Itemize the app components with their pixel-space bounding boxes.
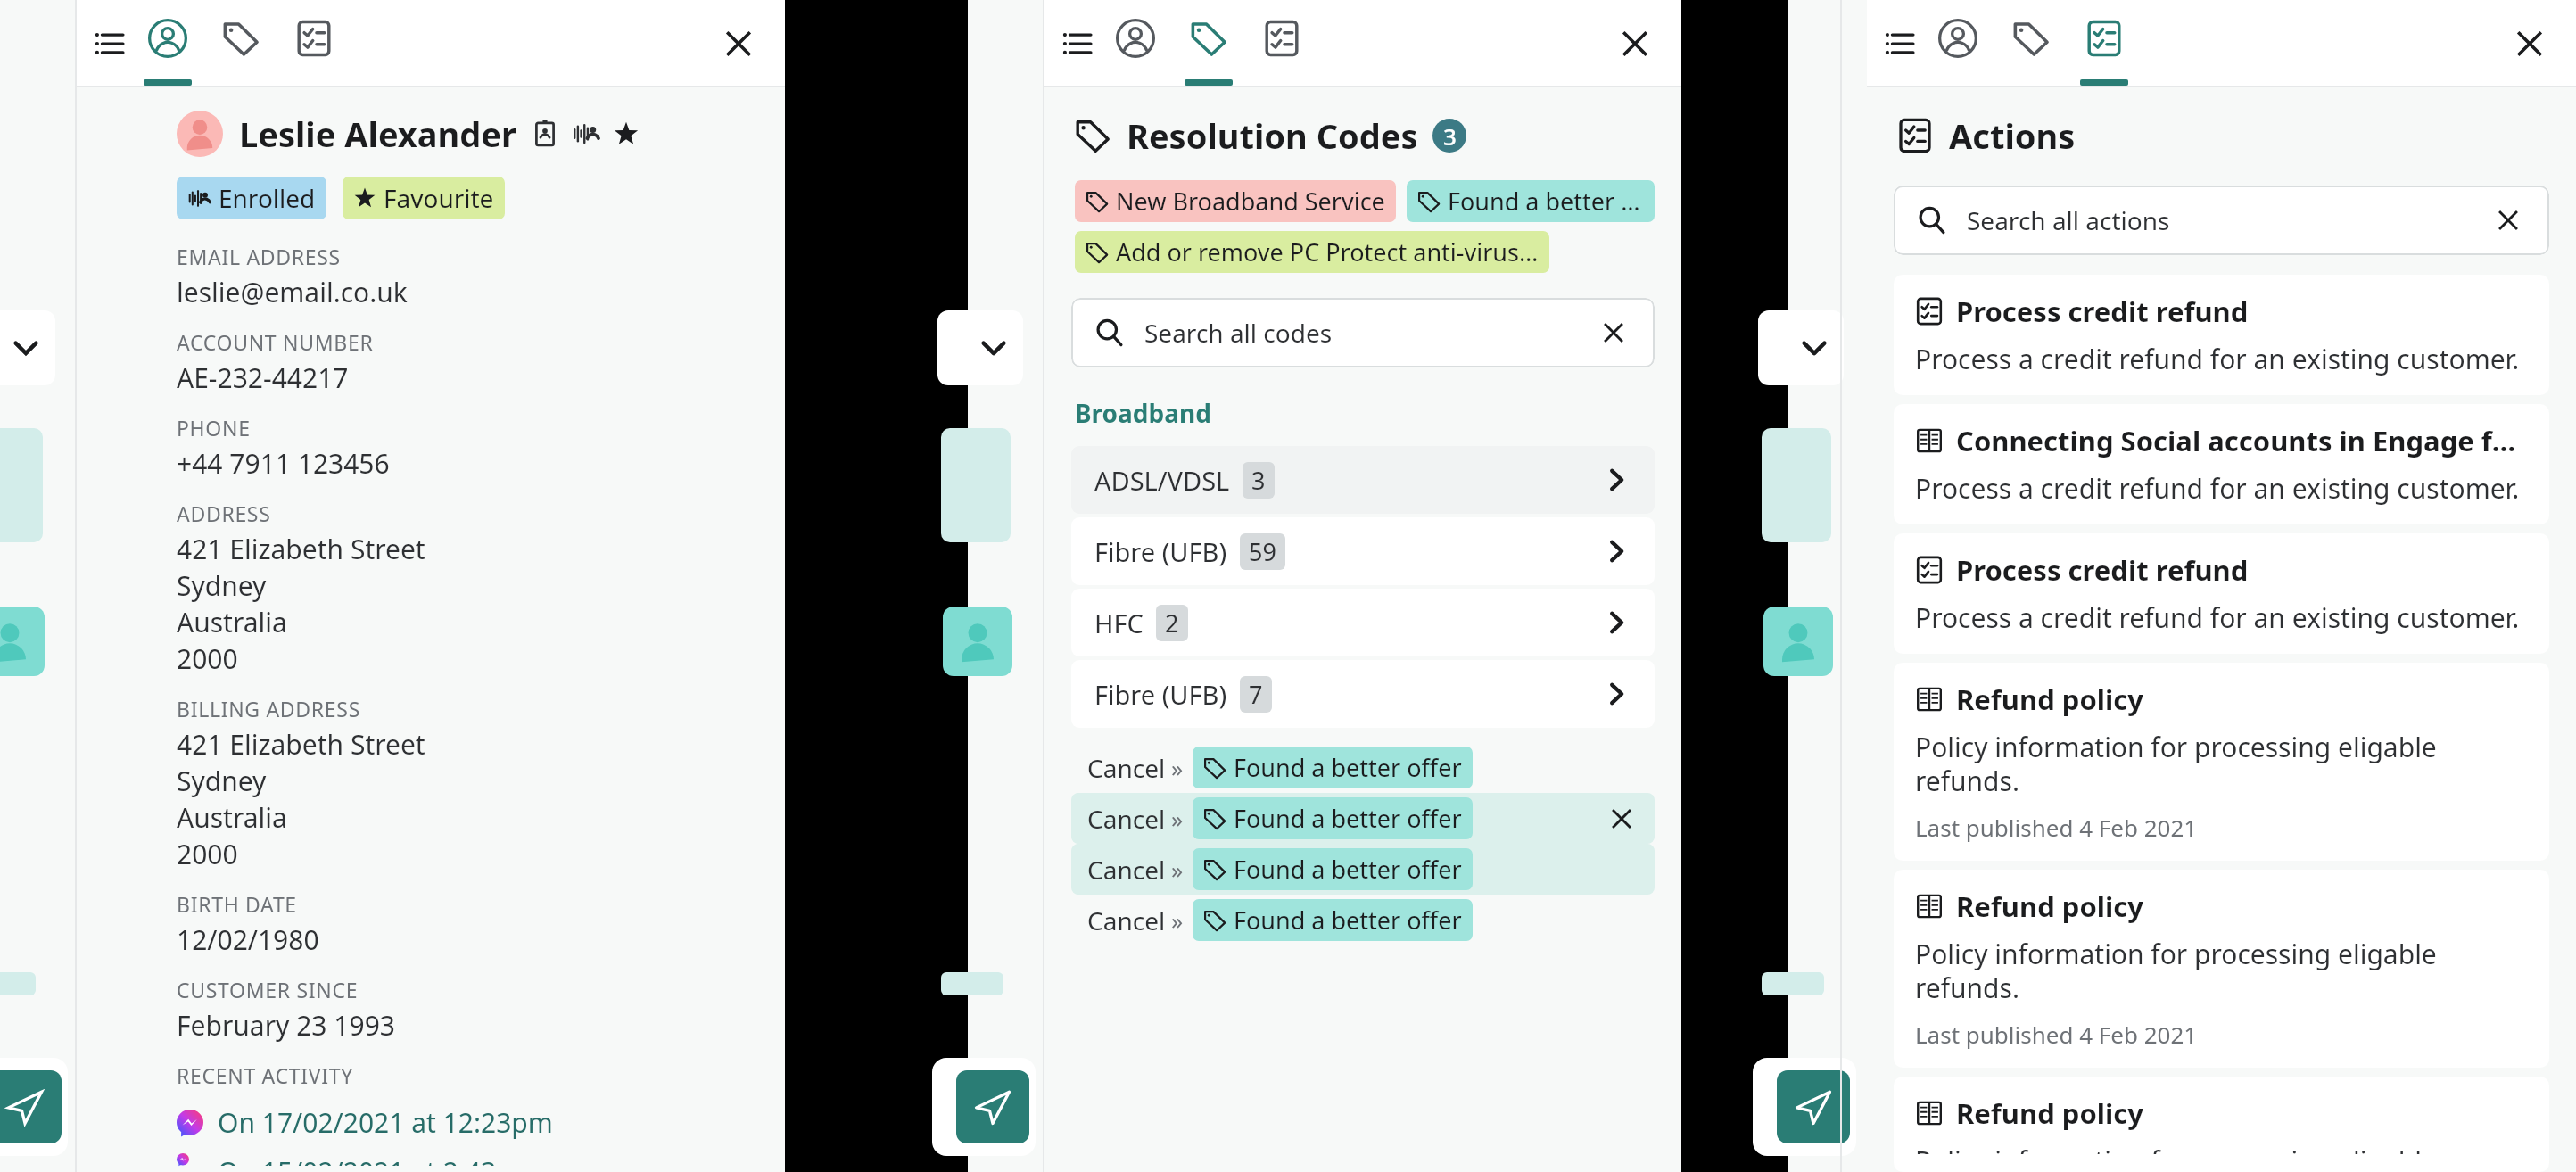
staticText: 12/02/1980: [177, 921, 319, 958]
staticText: Policy information for processing eligab…: [1915, 729, 2528, 799]
staticText: Actions: [1949, 112, 2076, 159]
button[interactable]: Resolution codes: [205, 0, 277, 87]
button[interactable]: Fibre (UFB): [1071, 660, 1655, 728]
button[interactable]: Favourite: [343, 177, 505, 219]
button[interactable]: Actions: [1246, 0, 1317, 87]
staticText: 2000: [177, 640, 238, 677]
staticText: Add or remove PC Protect anti-virus…: [1116, 235, 1539, 268]
staticText: +44 7911 123456: [177, 445, 390, 482]
button[interactable]: Cancel: [1071, 844, 1655, 895]
button[interactable]: Cancel: [1071, 793, 1655, 844]
button[interactable]: Connecting Social accounts in Engage for…: [1894, 404, 2549, 524]
staticText: RECENT ACTIVITY: [177, 1061, 353, 1089]
button[interactable]: ADSL/VDSL: [1071, 446, 1655, 514]
button[interactable]: Actions: [278, 0, 350, 87]
staticText: »: [1171, 752, 1184, 783]
button[interactable]: Close: [712, 17, 765, 70]
button[interactable]: Resolution codes: [1173, 0, 1244, 87]
button[interactable]: Clear search: [1596, 315, 1631, 351]
button[interactable]: Refund policy: [1894, 1077, 2549, 1172]
button[interactable]: Found a better offer: [1407, 180, 1655, 222]
button[interactable]: Send: [0, 1070, 62, 1143]
staticText: 7: [1249, 678, 1263, 711]
staticText: AE-232-44217: [177, 359, 349, 396]
staticText: 2: [1165, 607, 1179, 640]
button[interactable]: Expand: [0, 310, 55, 385]
button[interactable]: Found a better offer: [1193, 797, 1473, 839]
staticText: Broadband: [1075, 396, 1211, 430]
staticText: Policy information for processing eligab…: [1915, 936, 2528, 1006]
staticText: 3: [1251, 464, 1266, 497]
button[interactable]: Menu: [1874, 19, 1924, 69]
button[interactable]: Customer: [1922, 0, 1994, 87]
staticText: Leslie Alexander: [239, 111, 516, 157]
staticText: Search all codes: [1144, 316, 1596, 350]
staticText: »: [1171, 803, 1184, 834]
button[interactable]: On 17/02/2021 at 12:23pm: [177, 1098, 764, 1147]
button[interactable]: Expand: [937, 310, 1023, 385]
button[interactable]: Cancel: [1071, 895, 1655, 945]
button[interactable]: Found a better offer: [1193, 747, 1473, 788]
staticText: Cancel: [1087, 802, 1166, 836]
button[interactable]: Process credit refund: [1894, 533, 2549, 654]
staticText: 3: [1443, 120, 1457, 152]
button[interactable]: Found a better offer: [1193, 848, 1473, 890]
staticText: 421 Elizabeth Street: [177, 726, 425, 763]
button[interactable]: Favourite: [613, 120, 640, 147]
staticText: Connecting Social accounts in Engage for…: [1956, 422, 2528, 459]
button[interactable]: New Broadband Service: [1075, 180, 1396, 222]
button[interactable]: HFC: [1071, 589, 1655, 656]
staticText: Sydney: [177, 567, 267, 604]
staticText: Search all actions: [1967, 203, 2490, 237]
button[interactable]: Expand: [1758, 310, 1844, 385]
staticText: Resolution Codes: [1127, 112, 1418, 159]
staticText: 421 Elizabeth Street: [177, 531, 425, 567]
button[interactable]: Enrolled: [177, 177, 326, 219]
button[interactable]: Search all actions: [1894, 186, 2549, 255]
staticText: Fibre (UFB): [1094, 534, 1227, 569]
button[interactable]: Cancel: [1071, 742, 1655, 793]
button[interactable]: Customer: [132, 0, 203, 87]
button[interactable]: Refund policy: [1894, 663, 2549, 861]
button[interactable]: Process credit refund: [1894, 275, 2549, 395]
staticText: »: [1171, 904, 1184, 936]
button[interactable]: Identity: [531, 120, 559, 148]
button[interactable]: Customer: [1100, 0, 1171, 87]
button[interactable]: Add or remove PC Protect anti-virus…: [1075, 231, 1549, 273]
button[interactable]: Search all codes: [1071, 298, 1655, 367]
button[interactable]: Send: [956, 1070, 1029, 1143]
button[interactable]: Close: [1608, 17, 1662, 70]
staticText: ACCOUNT NUMBER: [177, 328, 374, 356]
staticText: Enrolled: [219, 181, 316, 215]
staticText: New Broadband Service: [1116, 185, 1385, 218]
staticText: Cancel: [1087, 853, 1166, 887]
staticText: Process a credit refund for an existing …: [1915, 470, 2520, 507]
staticText: Last published 4 Feb 2021: [1915, 812, 2198, 843]
staticText: 59: [1249, 535, 1276, 568]
staticText: PHONE: [177, 414, 251, 442]
button[interactable]: Remove: [1605, 802, 1639, 836]
staticText: On 15/02/2021 at 2:43pm: [218, 1153, 538, 1166]
staticText: ADDRESS: [177, 499, 271, 527]
staticText: »: [1171, 854, 1184, 885]
button[interactable]: Found a better offer: [1193, 899, 1473, 941]
button[interactable]: Resolution codes: [1995, 0, 2067, 87]
button[interactable]: On 15/02/2021 at 2:43pm: [177, 1147, 764, 1172]
button[interactable]: Close: [2503, 17, 2556, 70]
staticText: Sydney: [177, 763, 267, 799]
staticText: Refund policy: [1956, 887, 2143, 925]
staticText: Fibre (UFB): [1094, 677, 1227, 712]
button[interactable]: Menu: [1052, 19, 1102, 69]
staticText: Found a better offer: [1234, 904, 1462, 937]
button[interactable]: Clear search: [2490, 202, 2526, 238]
staticText: leslie@email.co.uk: [177, 274, 408, 310]
button[interactable]: Actions: [2068, 0, 2140, 87]
button[interactable]: Refund policy: [1894, 870, 2549, 1068]
button[interactable]: Send: [1777, 1070, 1850, 1143]
staticText: EMAIL ADDRESS: [177, 243, 341, 270]
button[interactable]: Menu: [84, 19, 134, 69]
button[interactable]: Fibre (UFB): [1071, 517, 1655, 585]
staticText: Process credit refund: [1956, 293, 2249, 330]
button[interactable]: Voice: [572, 120, 600, 148]
staticText: Favourite: [384, 181, 494, 215]
